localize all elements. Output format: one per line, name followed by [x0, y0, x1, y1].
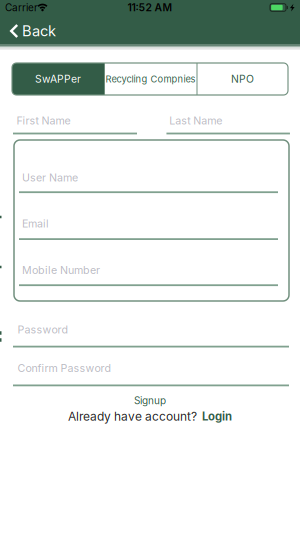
staticText: Back: [22, 22, 56, 40]
staticText: SwAPPer: [35, 73, 81, 85]
staticText: Confirm Password: [17, 361, 111, 374]
staticText: Already have account?: [68, 409, 197, 424]
staticText: Last Name: [169, 114, 222, 127]
staticText: User Name: [22, 171, 78, 184]
button[interactable]: NPO: [197, 63, 288, 95]
button[interactable]: Login: [202, 410, 232, 423]
staticText: Login: [202, 410, 232, 423]
staticText: First Name: [16, 114, 70, 127]
button[interactable]: Back: [10, 16, 80, 46]
staticText: Signup: [134, 394, 166, 407]
staticText: Recycling Compnies: [105, 73, 195, 85]
staticText: Password: [17, 323, 68, 336]
button[interactable]: Recycling Compnies: [104, 63, 197, 95]
button[interactable]: SwAPPer: [12, 63, 104, 95]
staticText: 11:52 AM: [127, 1, 172, 14]
staticText: NPO: [231, 73, 254, 85]
button[interactable]: Signup: [120, 393, 180, 407]
staticText: Email: [22, 217, 49, 230]
staticText: Carrier: [5, 1, 38, 14]
staticText: Mobile Number: [22, 263, 100, 276]
